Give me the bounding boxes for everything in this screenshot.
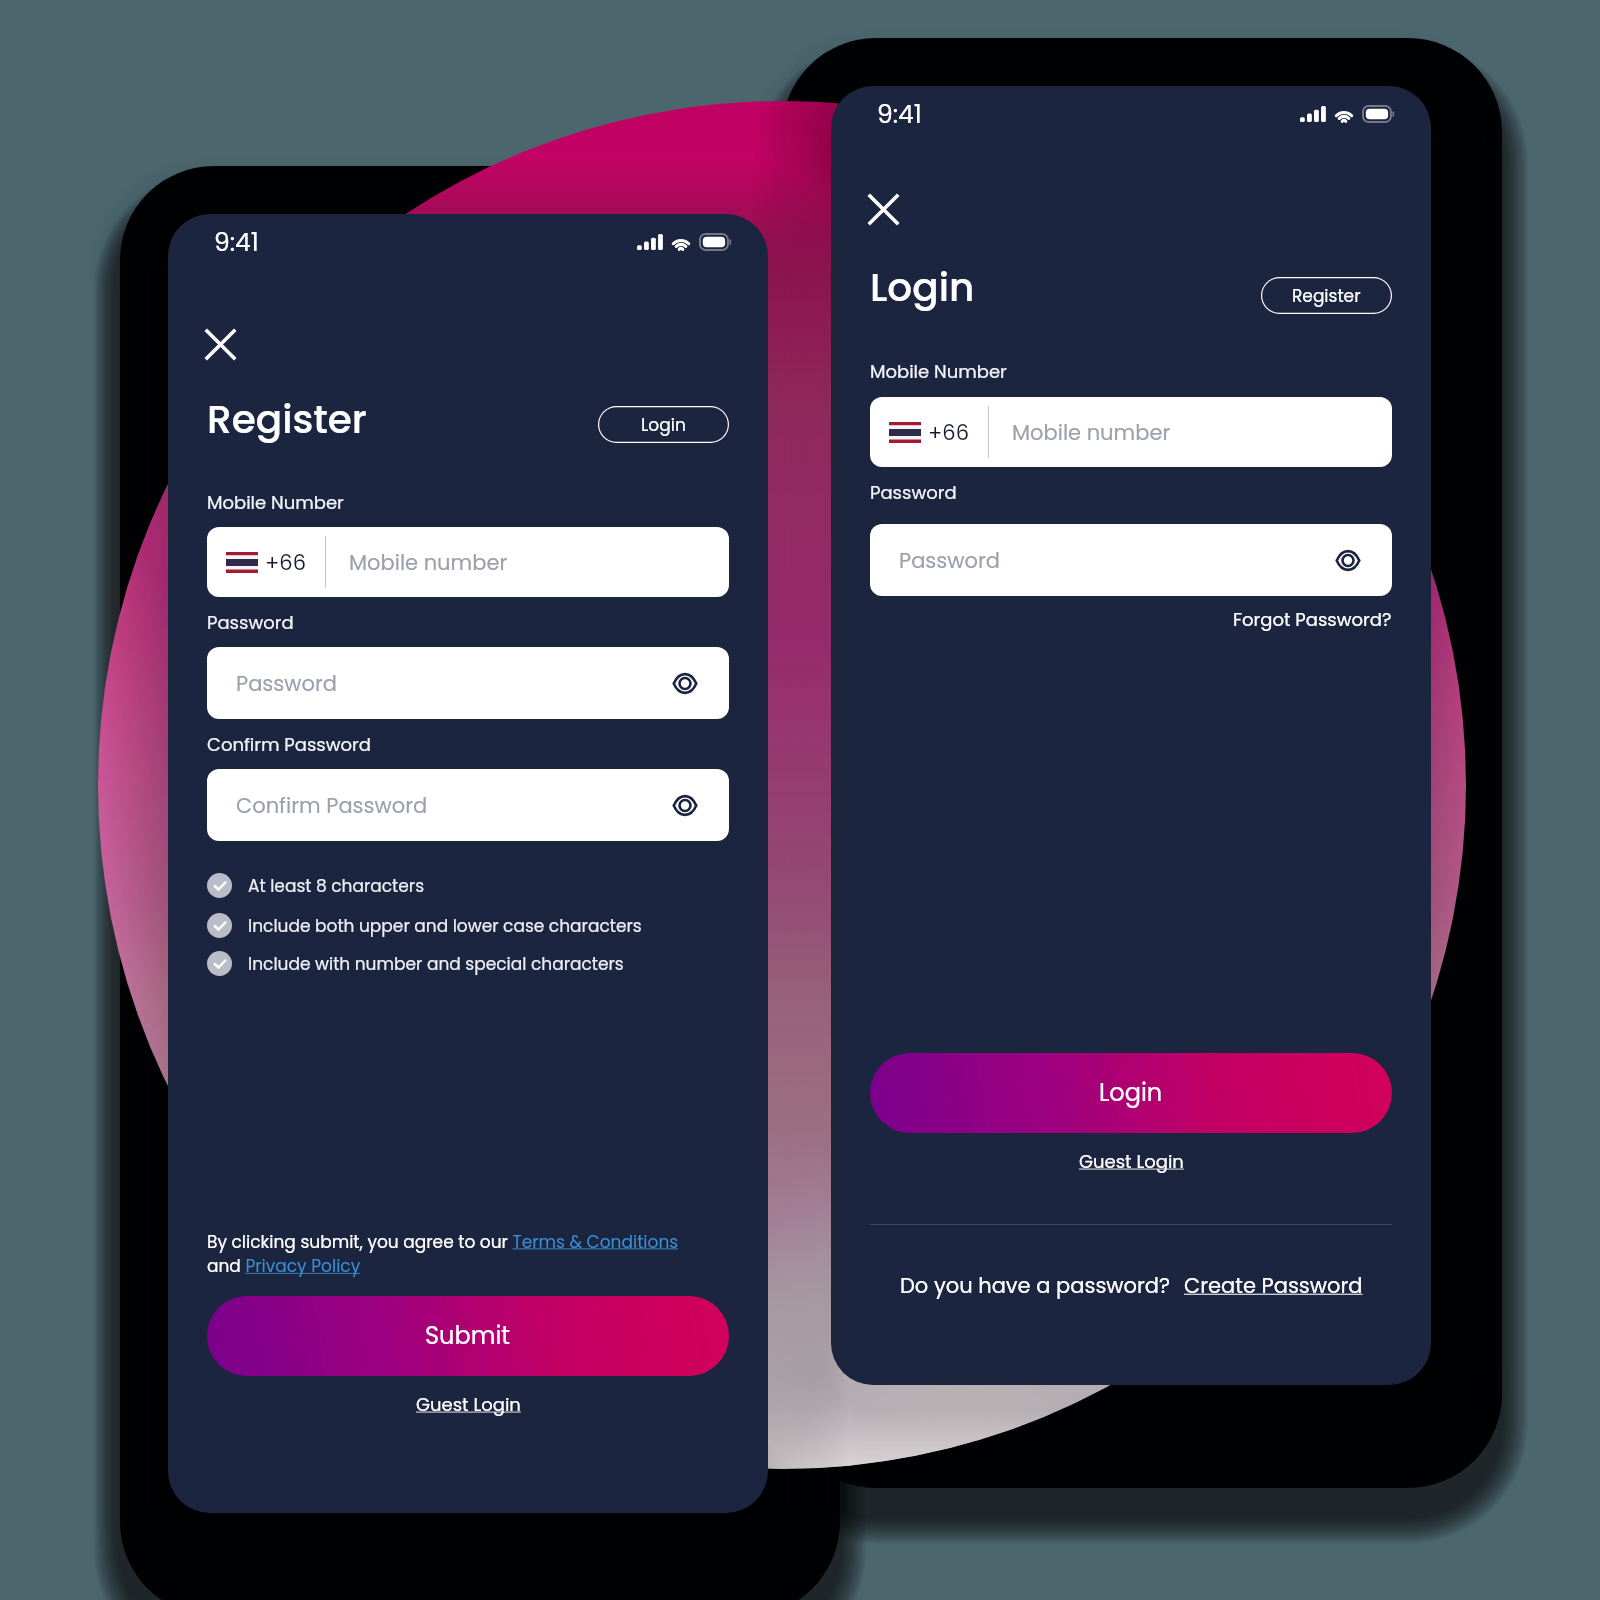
staticText: Login (641, 413, 686, 437)
staticText: Register (207, 392, 367, 447)
button[interactable]: Show password (669, 789, 701, 821)
button[interactable]: Create Password (1184, 1271, 1363, 1300)
staticText: Mobile Number (207, 490, 344, 515)
staticText: Forgot Password? (1233, 607, 1392, 632)
staticText: Password (870, 480, 957, 505)
staticText: Submit (425, 1319, 511, 1353)
button[interactable]: Show password (1332, 544, 1364, 576)
staticText: 9:41 (877, 97, 922, 132)
staticText: Password (236, 669, 669, 698)
button[interactable]: Password (870, 524, 1392, 596)
staticText: Login (870, 260, 975, 315)
button[interactable]: Guest Login (1079, 1149, 1184, 1174)
staticText: Confirm Password (207, 732, 371, 757)
button[interactable]: Password (207, 647, 729, 719)
staticText: Mobile number (349, 548, 508, 577)
staticText: Confirm Password (236, 791, 669, 820)
staticText: Mobile Number (870, 359, 1007, 384)
staticText: At least 8 characters (248, 874, 425, 898)
button[interactable]: Confirm Password (207, 769, 729, 841)
staticText: Include both upper and lower case charac… (248, 914, 642, 938)
button[interactable]: Login (598, 406, 729, 443)
staticText: +66 (265, 548, 307, 577)
staticText: Password (207, 610, 294, 635)
staticText: Login (1099, 1076, 1163, 1110)
button[interactable]: Register (1261, 277, 1392, 314)
staticText: Register (1292, 284, 1361, 308)
button[interactable]: +66 (870, 397, 1392, 467)
staticText: +66 (928, 418, 970, 447)
button[interactable]: Close (201, 325, 239, 363)
button[interactable]: Close (864, 190, 902, 228)
button[interactable]: Guest Login (416, 1392, 521, 1417)
button[interactable]: Submit (207, 1296, 729, 1376)
staticText: 9:41 (214, 225, 259, 260)
button[interactable]: Show password (669, 667, 701, 699)
button[interactable]: Forgot Password? (1233, 607, 1392, 632)
staticText: By clicking submit, you agree to our Ter… (207, 1230, 735, 1278)
button[interactable]: Login (870, 1053, 1392, 1133)
staticText: Include with number and special characte… (248, 952, 624, 976)
button[interactable]: +66 (207, 527, 729, 597)
staticText: Password (899, 546, 1332, 575)
staticText: Mobile number (1012, 418, 1171, 447)
staticText: Do you have a password? (900, 1271, 1171, 1300)
